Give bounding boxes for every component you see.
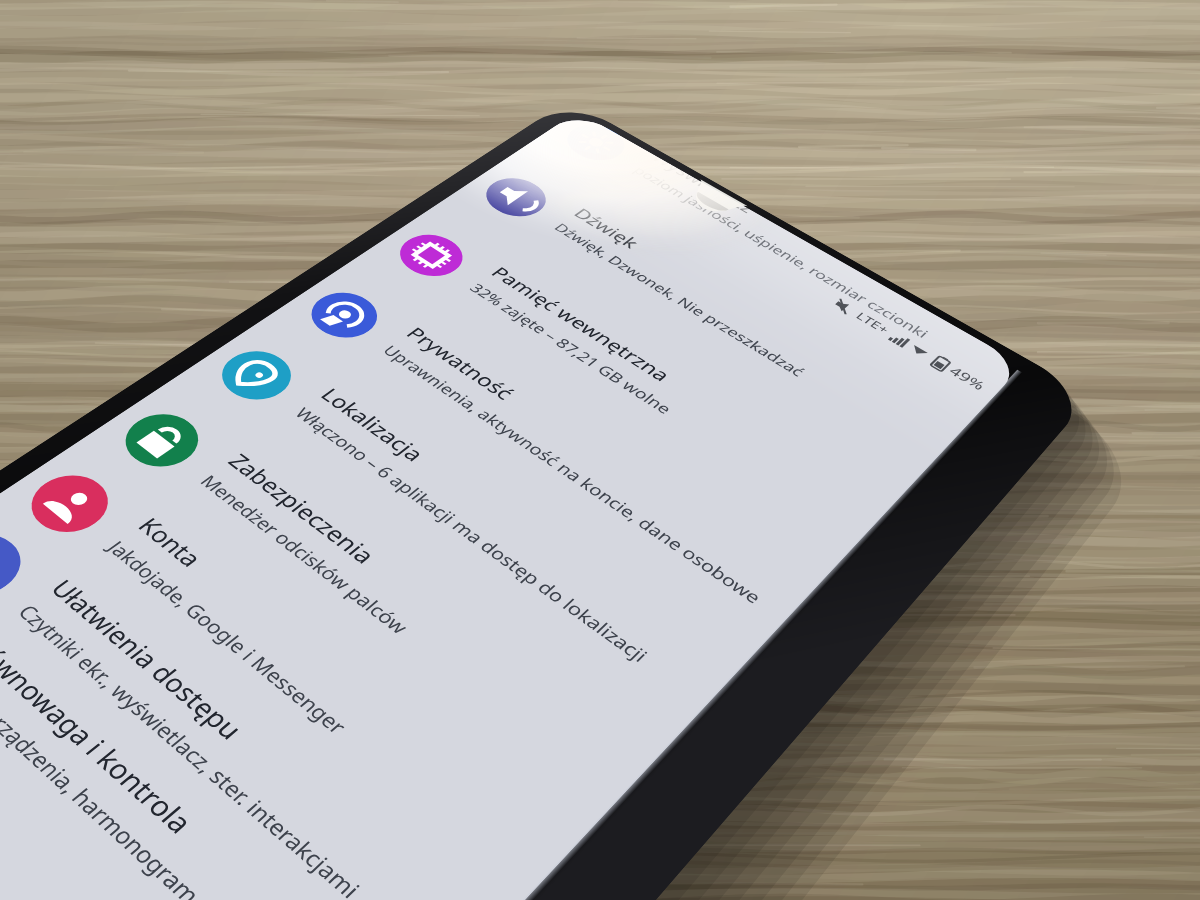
button[interactable]: Ułatwienia dostępu [0,493,511,900]
staticText: Pamięć wewnętrzna [486,262,677,386]
staticText: Jakdojade, Google i Messenger [102,536,353,740]
staticText: Czas z urządzenia, harmonogram [0,658,208,900]
staticText: Dźwięk [569,204,645,252]
button[interactable]: Równowaga i kontrola [0,545,437,900]
other: Silent mode [829,297,857,316]
staticText: Włączono – 6 aplikacji ma dostęp do loka… [290,403,654,668]
staticText: Ułatwienia dostępu [43,572,252,747]
staticText: poziom jasności, uśpienie, rozmiar czcio… [630,164,932,341]
staticText: Lokalizacja [314,383,432,467]
staticText: Menedżer odcisków palców [194,470,415,639]
staticText: Konta [131,511,211,573]
staticText: Zabezpieczenia [221,448,383,570]
staticText: Prywatność [400,322,520,404]
button[interactable]: Konta [0,436,590,900]
button[interactable]: Lokalizacja [171,318,752,747]
staticText: Równowaga i kontrola [0,630,203,842]
staticText: Uprawnienia, aktywność na koncie, dane o… [378,341,766,608]
staticText: Czytniki ekr., wyświetlacz, ster. intera… [11,599,368,900]
staticText: LTE+ [852,309,893,337]
staticText: Wyświetlacz [647,155,752,217]
button[interactable]: Wyświetlacz [527,111,1024,411]
button[interactable]: Zabezpieczenia [72,378,670,845]
staticText: 32% zajęte – 87,21 GB wolne [465,280,677,418]
button[interactable]: Prywatność [263,262,827,658]
button[interactable]: Pamięć wewnętrzna [355,206,900,572]
staticText: 49% [945,363,989,394]
button[interactable]: Dźwięk [443,152,971,488]
staticText: Dźwięk, Dzwonek, Nie przeszkadzać [550,220,809,380]
